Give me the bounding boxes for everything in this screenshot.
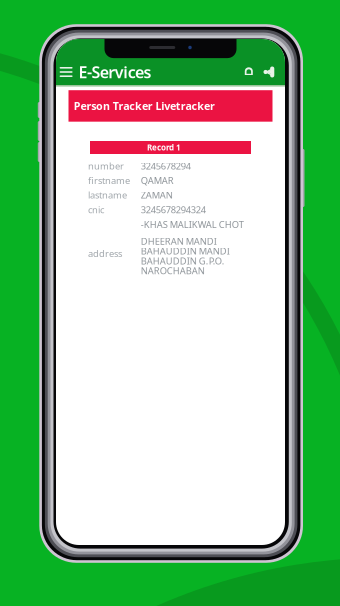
- staticText: BAHAUDDIN MANDI: [141, 245, 230, 257]
- staticText: number: [88, 160, 124, 172]
- staticText: BAHAUDDIN G.P.O.: [141, 255, 225, 267]
- staticText: cnic: [88, 203, 104, 216]
- button[interactable]: Share: [258, 61, 280, 83]
- staticText: Person Tracker Livetracker: [74, 99, 215, 113]
- staticText: 3245678294324: [141, 203, 206, 216]
- staticText: Record 1: [147, 142, 181, 153]
- staticText: DHEERAN MANDI: [141, 235, 217, 247]
- staticText: 3245678294: [141, 160, 191, 172]
- button[interactable]: Notifications: [239, 61, 259, 83]
- staticText: lastname: [88, 189, 127, 201]
- staticText: -KHAS MALIKWAL CHOT: [141, 218, 244, 231]
- staticText: firstname: [88, 174, 130, 187]
- staticText: NAROCHABAN: [141, 264, 205, 277]
- staticText: ZAMAN: [141, 189, 173, 201]
- staticText: address: [88, 247, 122, 260]
- staticText: E-Services: [78, 61, 152, 83]
- button[interactable]: Menu: [55, 60, 78, 84]
- staticText: QAMAR: [141, 174, 174, 187]
